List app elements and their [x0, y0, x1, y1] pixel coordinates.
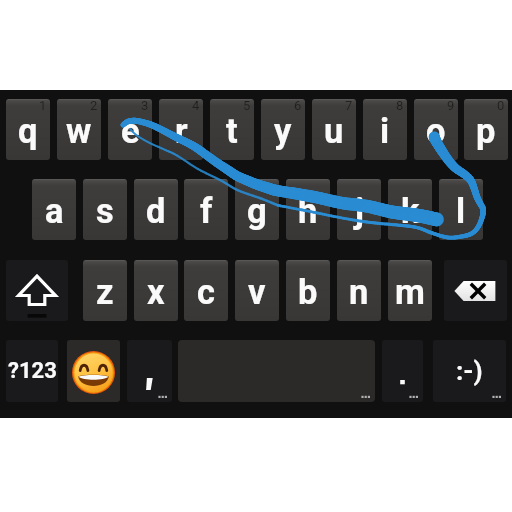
staticText: s: [96, 191, 114, 231]
button[interactable]: s: [83, 179, 127, 240]
staticText: 2: [90, 99, 98, 113]
staticText: 7: [345, 99, 353, 113]
staticText: e: [121, 111, 140, 151]
button[interactable]: Shift: [6, 260, 68, 321]
button[interactable]: z: [83, 260, 127, 321]
staticText: r: [175, 111, 188, 151]
button[interactable]: m: [388, 260, 432, 321]
staticText: f: [200, 191, 213, 231]
staticText: l: [456, 191, 466, 231]
button[interactable]: Backspace: [444, 260, 507, 321]
button[interactable]: x: [134, 260, 178, 321]
staticText: 3: [141, 99, 149, 113]
button[interactable]: j: [337, 179, 381, 240]
staticText: u: [324, 111, 344, 151]
staticText: g: [247, 191, 267, 231]
staticText: 1: [39, 99, 47, 113]
staticText: k: [401, 191, 420, 231]
staticText: p: [476, 111, 496, 151]
staticText: q: [18, 111, 38, 151]
staticText: d: [146, 191, 166, 231]
button[interactable]: v: [235, 260, 279, 321]
button[interactable]: n: [337, 260, 381, 321]
staticText: x: [147, 272, 165, 312]
button[interactable]: Comma: [127, 340, 172, 402]
button[interactable]: l: [439, 179, 483, 240]
staticText: i: [380, 111, 390, 151]
button[interactable]: 1: [6, 99, 50, 160]
button[interactable]: c: [184, 260, 228, 321]
button[interactable]: Period: [382, 340, 423, 402]
button[interactable]: 5: [210, 99, 254, 160]
button[interactable]: k: [388, 179, 432, 240]
staticText: c: [197, 272, 215, 312]
staticText: :-): [456, 356, 483, 386]
button[interactable]: 0: [464, 99, 508, 160]
button[interactable]: 6: [261, 99, 305, 160]
staticText: w: [66, 111, 92, 151]
staticText: m: [395, 272, 425, 312]
staticText: t: [226, 111, 238, 151]
staticText: 9: [447, 99, 455, 113]
button[interactable]: d: [134, 179, 178, 240]
button[interactable]: ?123: [6, 340, 58, 402]
button[interactable]: 9: [414, 99, 458, 160]
button[interactable]: 8: [363, 99, 407, 160]
button[interactable]: a: [32, 179, 76, 240]
button[interactable]: b: [286, 260, 330, 321]
staticText: b: [298, 272, 318, 312]
staticText: o: [426, 111, 446, 151]
button[interactable]: Emoji: [67, 340, 120, 402]
staticText: 4: [192, 99, 200, 113]
staticText: 5: [243, 99, 251, 113]
staticText: v: [248, 272, 266, 312]
staticText: 0: [497, 99, 505, 113]
staticText: n: [349, 272, 369, 312]
staticText: 8: [396, 99, 404, 113]
button[interactable]: 7: [312, 99, 356, 160]
button[interactable]: 4: [159, 99, 203, 160]
staticText: z: [96, 272, 114, 312]
button[interactable]: 3: [108, 99, 152, 160]
staticText: j: [355, 191, 364, 231]
button[interactable]: 2: [57, 99, 101, 160]
staticText: y: [274, 111, 292, 151]
button[interactable]: Space: [178, 340, 375, 402]
button[interactable]: f: [184, 179, 228, 240]
staticText: h: [298, 191, 318, 231]
staticText: ?123: [8, 358, 57, 384]
button[interactable]: :-): [433, 340, 506, 402]
staticText: a: [45, 191, 64, 231]
staticText: 6: [294, 99, 302, 113]
button[interactable]: h: [286, 179, 330, 240]
button[interactable]: g: [235, 179, 279, 240]
